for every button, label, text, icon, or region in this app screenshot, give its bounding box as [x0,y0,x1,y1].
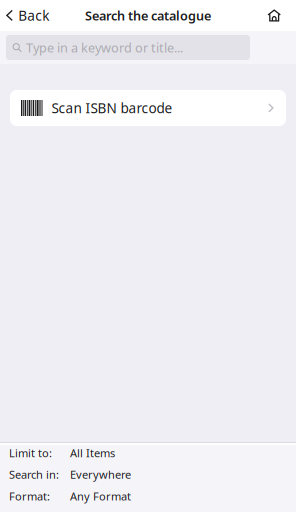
staticText: Any Format [70,489,131,504]
staticText: Search the catalogue [85,7,211,24]
button[interactable]: Scan ISBN barcode [10,90,286,126]
staticText: Back [18,6,49,25]
button[interactable]: Home [267,0,296,31]
button[interactable]: Limit to: [0,442,296,464]
button[interactable]: Search in: [0,464,296,485]
staticText: All Items [70,445,115,460]
button[interactable]: Back [0,0,57,31]
staticText: Everywhere [70,467,131,482]
staticText: Limit to: [9,445,52,460]
staticText: Format: [9,489,50,504]
button[interactable]: Format: [0,485,296,507]
staticText: Type in a keyword or title... [26,39,183,56]
button[interactable]: Type in a keyword or title... [6,35,250,60]
staticText: Scan ISBN barcode [51,99,172,117]
staticText: Search in: [9,467,59,482]
